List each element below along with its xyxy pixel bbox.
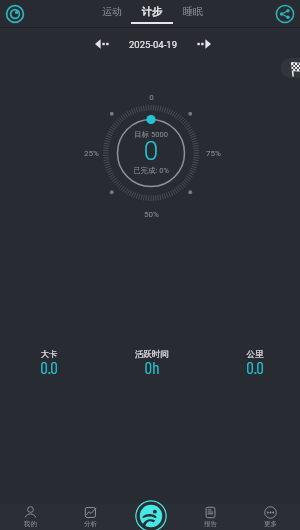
staticText: 运动: [90, 5, 134, 18]
staticText: 50%: [144, 210, 159, 219]
button[interactable]: Start activity: [135, 500, 167, 530]
staticText: 25%: [84, 149, 99, 158]
button[interactable]: 公里: [215, 349, 295, 380]
staticText: 75%: [206, 149, 221, 158]
button[interactable]: Next day: [193, 33, 215, 55]
button[interactable]: 活跃时间: [112, 349, 192, 380]
staticText: 0.0: [215, 357, 295, 377]
button[interactable]: Previous day: [91, 33, 113, 55]
staticText: 大卡: [9, 349, 89, 360]
staticText: 活跃时间: [112, 349, 192, 360]
button[interactable]: 计步: [130, 0, 174, 27]
staticText: 公里: [215, 349, 295, 360]
staticText: 计步: [130, 5, 174, 18]
button[interactable]: App logo: [5, 4, 25, 24]
button[interactable]: 运动: [90, 0, 134, 27]
button[interactable]: 分析: [60, 504, 120, 530]
staticText: 2025-04-19: [129, 39, 177, 50]
staticText: 0: [81, 136, 221, 166]
button[interactable]: Goal flag: [281, 58, 300, 78]
staticText: 0h: [112, 357, 192, 377]
button[interactable]: 大卡: [9, 349, 89, 380]
button[interactable]: Share: [275, 4, 295, 24]
staticText: 我的: [24, 520, 37, 528]
button[interactable]: 报告: [180, 504, 240, 530]
staticText: 0: [149, 93, 154, 102]
staticText: 更多: [264, 520, 277, 528]
staticText: 已完成: 0%: [81, 166, 221, 175]
staticText: 0.0: [9, 357, 89, 377]
button[interactable]: 更多: [240, 504, 300, 530]
staticText: 目标 5000: [81, 130, 221, 139]
button[interactable]: 睡眠: [171, 0, 215, 27]
staticText: 分析: [84, 520, 97, 528]
staticText: 报告: [204, 520, 217, 528]
button[interactable]: 我的: [0, 504, 60, 530]
staticText: 睡眠: [171, 5, 215, 18]
